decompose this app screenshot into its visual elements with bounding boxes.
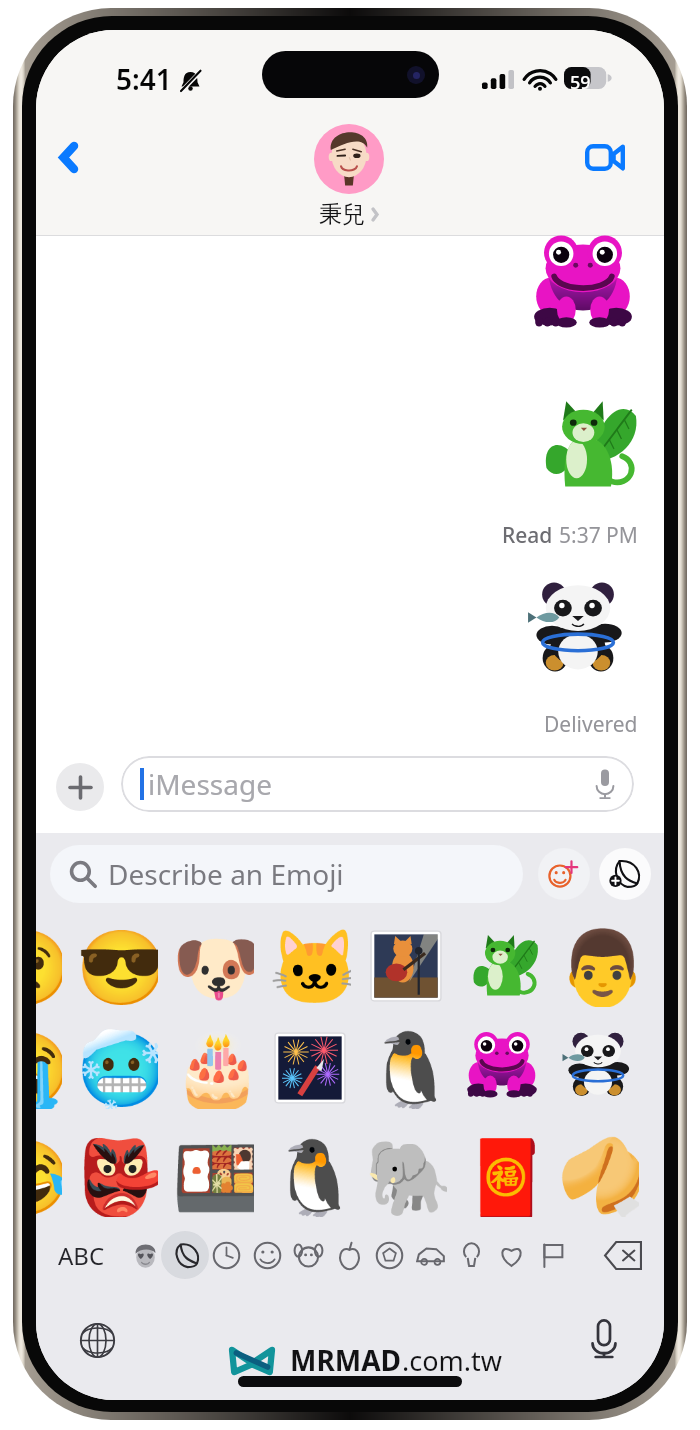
staticText: 🐶 — [172, 925, 254, 1007]
button[interactable]: Emoji 21 — [557, 1135, 639, 1217]
staticText: iMessage — [148, 765, 272, 803]
button[interactable]: Create sticker — [599, 848, 651, 900]
button[interactable]: Emoji category 4 — [247, 1235, 287, 1275]
button[interactable]: Emoji 7 — [557, 925, 639, 1007]
button[interactable]: Pink frog sticker — [531, 234, 635, 338]
button[interactable]: Change keyboard — [72, 1315, 122, 1365]
staticText: MRMAD — [290, 1341, 402, 1379]
button[interactable]: Create emoji — [538, 848, 590, 900]
button[interactable]: Emoji category 9 — [451, 1235, 491, 1275]
button[interactable]: Emoji 15 — [36, 1135, 62, 1217]
button[interactable]: Emoji category 5 — [288, 1235, 328, 1275]
button[interactable]: Add attachment — [56, 763, 104, 811]
staticText: 秉兒 — [319, 200, 365, 229]
staticText: 59 — [570, 70, 591, 95]
button[interactable]: Emoji 1 — [36, 925, 62, 1007]
staticText: 😢 — [36, 925, 62, 1007]
button[interactable]: Emoji category 10 — [491, 1235, 531, 1275]
button[interactable]: Emoji 14 — [557, 1027, 639, 1109]
staticText: 🥶 — [76, 1027, 158, 1109]
staticText: 🐘 — [365, 1135, 447, 1217]
button[interactable]: Emoji category 7 — [369, 1235, 409, 1275]
staticText: 🧧 — [461, 1135, 543, 1217]
staticText: 😭 — [36, 1027, 62, 1109]
button[interactable]: Dictation — [579, 1314, 629, 1364]
button[interactable]: FaceTime video call — [574, 126, 636, 188]
staticText: 5:41 — [116, 60, 172, 98]
staticText: 🐱 — [269, 925, 351, 1007]
staticText: 👨 — [557, 925, 639, 1007]
button[interactable]: Emoji 2 — [76, 925, 158, 1007]
button[interactable]: Delete — [599, 1231, 647, 1279]
staticText: 🍱 — [172, 1135, 254, 1217]
button[interactable]: Green leaf cat sticker — [534, 393, 638, 497]
button[interactable]: Emoji 13 — [461, 1027, 543, 1109]
button[interactable]: Panda sticker — [526, 580, 630, 684]
button[interactable]: Emoji 12 — [365, 1027, 447, 1109]
button[interactable]: 秉兒 — [314, 124, 384, 229]
button[interactable]: Emoji 19 — [365, 1135, 447, 1217]
button[interactable]: Emoji category 6 — [329, 1235, 369, 1275]
button[interactable]: Emoji 18 — [269, 1135, 351, 1217]
staticText: Describe an Emoji — [108, 855, 344, 893]
button[interactable]: Emoji 11 — [269, 1027, 351, 1109]
button[interactable]: Emoji category 2 — [166, 1235, 206, 1275]
button[interactable]: Emoji 6 — [461, 925, 543, 1007]
staticText: ABC — [58, 1239, 105, 1272]
button[interactable]: Emoji 8 — [36, 1027, 62, 1109]
button[interactable]: Back — [40, 129, 96, 185]
button[interactable]: Emoji 10 — [172, 1027, 254, 1109]
button[interactable]: Emoji category 3 — [206, 1235, 246, 1275]
button[interactable]: Emoji 4 — [269, 925, 351, 1007]
staticText: 5:37 PM — [559, 521, 638, 550]
staticText: 🐧 — [365, 1027, 447, 1109]
button[interactable]: ABC — [49, 1233, 113, 1277]
staticText: Delivered — [544, 710, 638, 739]
button[interactable]: Emoji category 1 — [125, 1235, 165, 1275]
button[interactable]: Emoji 9 — [76, 1027, 158, 1109]
button[interactable]: Emoji 20 — [461, 1135, 543, 1217]
button[interactable]: Describe an Emoji — [50, 845, 523, 903]
staticText: .com.tw — [402, 1342, 502, 1379]
button[interactable]: Emoji category 11 — [532, 1235, 572, 1275]
staticText: 😂 — [36, 1135, 62, 1217]
button[interactable]: Emoji category 8 — [410, 1235, 450, 1275]
staticText: 🐧 — [269, 1135, 351, 1217]
staticText: 🎂 — [172, 1027, 254, 1109]
staticText: Read — [502, 521, 553, 550]
button[interactable]: Emoji 3 — [172, 925, 254, 1007]
button[interactable]: Emoji 16 — [76, 1135, 158, 1217]
staticText: 🥠 — [557, 1135, 639, 1217]
staticText: 👺 — [76, 1135, 158, 1217]
button[interactable]: Emoji 17 — [172, 1135, 254, 1217]
button[interactable]: iMessage — [121, 756, 634, 812]
button[interactable]: Emoji 5 — [365, 925, 447, 1007]
staticText: 😎 — [76, 925, 158, 1007]
